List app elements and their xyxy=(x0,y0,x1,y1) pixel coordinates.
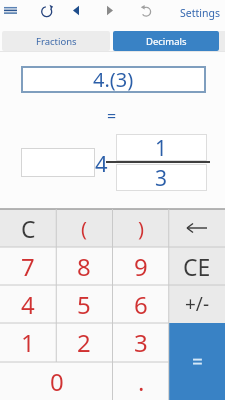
staticText: 5 xyxy=(77,288,91,321)
staticText: 2 xyxy=(77,326,91,359)
staticText: 4 xyxy=(95,148,108,177)
staticText: Decimals xyxy=(146,35,187,48)
button[interactable]: 1 xyxy=(0,323,56,362)
staticText: Fractions xyxy=(36,35,77,48)
staticText: . xyxy=(138,365,145,398)
staticText: +/- xyxy=(185,291,210,317)
button[interactable]: 8 xyxy=(56,247,112,285)
staticText: 1 xyxy=(21,326,35,359)
button[interactable]: 7 xyxy=(0,247,56,285)
staticText: 4 xyxy=(21,288,35,321)
staticText: 0 xyxy=(50,365,64,398)
button[interactable]: 5 xyxy=(56,285,112,323)
button[interactable]: Fractions xyxy=(2,31,110,51)
staticText: 6 xyxy=(134,288,148,321)
staticText: 8 xyxy=(77,250,91,283)
staticText: ) xyxy=(138,215,144,242)
button[interactable]: 3 xyxy=(113,323,169,362)
button[interactable] xyxy=(0,0,170,28)
button[interactable]: = xyxy=(169,323,225,400)
staticText: 7 xyxy=(21,250,35,283)
button[interactable]: Decimals xyxy=(113,31,219,51)
staticText: = xyxy=(192,349,203,375)
button[interactable]: CE xyxy=(169,247,225,285)
button[interactable]: 4.(3) xyxy=(21,66,206,93)
button[interactable]: ) xyxy=(113,209,169,247)
button[interactable]: Settings xyxy=(178,5,222,20)
staticText: 3 xyxy=(134,326,148,359)
button[interactable]: 9 xyxy=(113,247,169,285)
staticText: = xyxy=(107,105,117,121)
button[interactable]: ( xyxy=(56,209,112,247)
staticText: 3 xyxy=(155,164,168,191)
button[interactable]: 4 xyxy=(0,285,56,323)
staticText: 4.(3) xyxy=(93,66,134,93)
button[interactable]: 6 xyxy=(113,285,169,323)
button[interactable]: . xyxy=(113,362,169,400)
staticText: ( xyxy=(81,215,87,242)
staticText: C xyxy=(21,213,36,244)
button[interactable]: 0 xyxy=(0,362,113,400)
button[interactable]: +/- xyxy=(169,285,225,323)
staticText: 1 xyxy=(155,134,168,161)
button[interactable]: 2 xyxy=(56,323,112,362)
button[interactable]: C xyxy=(0,209,56,247)
staticText: CE xyxy=(183,251,211,282)
staticText: 9 xyxy=(134,250,148,283)
button[interactable] xyxy=(169,209,225,247)
staticText: Settings xyxy=(180,6,220,20)
